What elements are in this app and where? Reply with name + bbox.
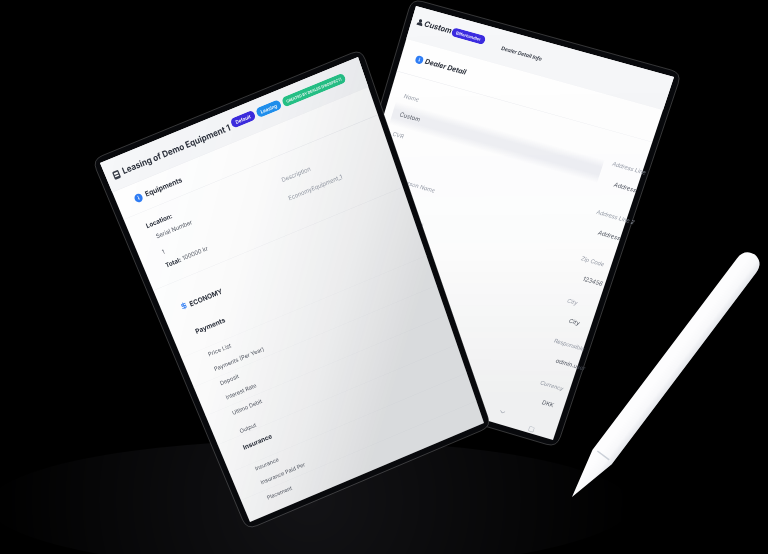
- staticText: Dealer Detail: [80, 142, 219, 169]
- button[interactable]: CREATED BY DEALER (PROSPECT): [592, 25, 768, 54]
- button[interactable]: Default: [420, 25, 498, 54]
- staticText: Location:: [57, 208, 144, 231]
- button[interactable]: Leasing of Demo Equipment 1: [54, 31, 413, 61]
- staticText: Leasing of Demo Equipment 1: [54, 31, 413, 61]
- staticText: EconomyEquipment_1: [505, 294, 689, 316]
- staticText: Leasing: [518, 31, 572, 48]
- staticText: Default: [434, 31, 484, 48]
- staticText: Dealer Detail Info: [305, 44, 440, 63]
- staticText: Serial Number: [73, 248, 195, 270]
- staticText: Equipments: [92, 120, 215, 145]
- staticText: Contact Person Name: [46, 528, 234, 550]
- button[interactable]: Dealer Detail Info: [305, 44, 440, 63]
- staticText: 100000 kr: [124, 338, 210, 360]
- button[interactable]: Leasing: [505, 25, 585, 54]
